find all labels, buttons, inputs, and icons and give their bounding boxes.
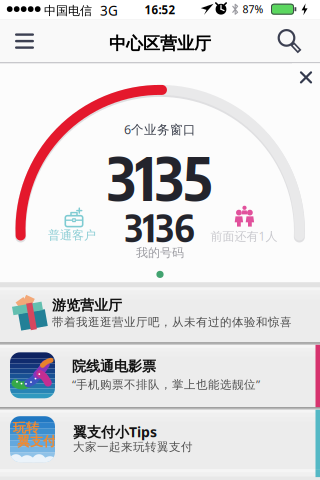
staticText: 中心区营业厅 [109, 33, 211, 54]
staticText: 翼支付 [17, 433, 56, 450]
staticText: 3G [100, 1, 118, 20]
staticText: 前面还有1人 [210, 228, 277, 244]
staticText: 87% [242, 2, 263, 16]
button[interactable] [0, 473, 320, 480]
button[interactable] [292, 63, 320, 91]
button[interactable] [8, 25, 52, 58]
staticText: 游览营业厅 [52, 296, 122, 314]
staticText: 带着我逛逛营业厅吧，从未有过的体验和惊喜 [52, 315, 292, 329]
staticText: 3136 [125, 204, 195, 251]
staticText: 6个业务窗口 [124, 121, 196, 138]
staticText: 院线通电影票 [72, 357, 156, 375]
staticText: 中国电信 [44, 3, 92, 18]
staticText: 16:52 [144, 2, 175, 18]
staticText: 玩转 [13, 420, 39, 436]
staticText: 3135 [107, 140, 212, 214]
staticText: 普通客户 [48, 228, 96, 243]
staticText: 大家一起来玩转翼支付 [73, 440, 193, 454]
button[interactable]: 院线通电影票 [0, 345, 320, 407]
staticText: “手机购票不排队，掌上也能选靓位” [72, 376, 260, 392]
staticText: 翼支付小Tips [73, 422, 157, 441]
button[interactable]: 游览营业厅 [0, 287, 320, 342]
staticText: 我的号码 [136, 245, 184, 260]
button[interactable]: 玩转 [0, 410, 320, 470]
button[interactable] [268, 25, 312, 58]
